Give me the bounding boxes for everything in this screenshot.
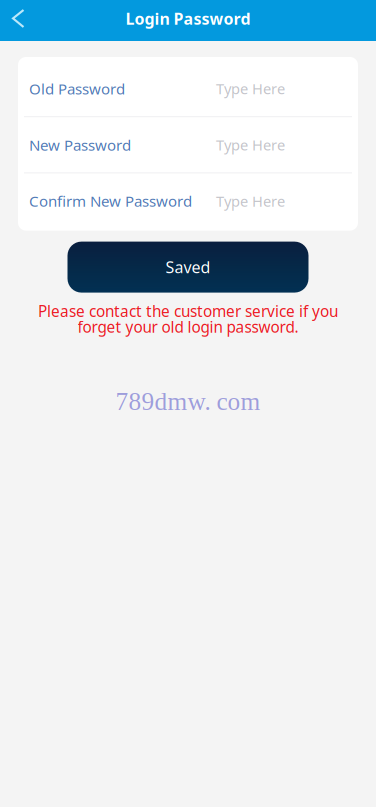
staticText: Type Here xyxy=(216,191,285,211)
staticText: Confirm New Password xyxy=(29,191,192,211)
button[interactable]: Confirm New Password xyxy=(18,173,358,229)
staticText: Saved xyxy=(165,256,210,278)
button[interactable]: Saved xyxy=(67,242,308,293)
staticText: Type Here xyxy=(216,135,285,155)
staticText: New Password xyxy=(29,134,131,155)
staticText: Type Here xyxy=(216,79,285,99)
button[interactable]: Old Password xyxy=(18,61,358,116)
staticText: Old Password xyxy=(29,78,125,99)
staticText: forget your old login password. xyxy=(77,316,298,337)
staticText: Login Password xyxy=(125,8,250,29)
staticText: 789dmw. com xyxy=(115,387,260,415)
staticText: Please contact the customer service if y… xyxy=(38,301,338,321)
button[interactable]: Back xyxy=(0,0,40,41)
button[interactable]: New Password xyxy=(18,117,358,172)
